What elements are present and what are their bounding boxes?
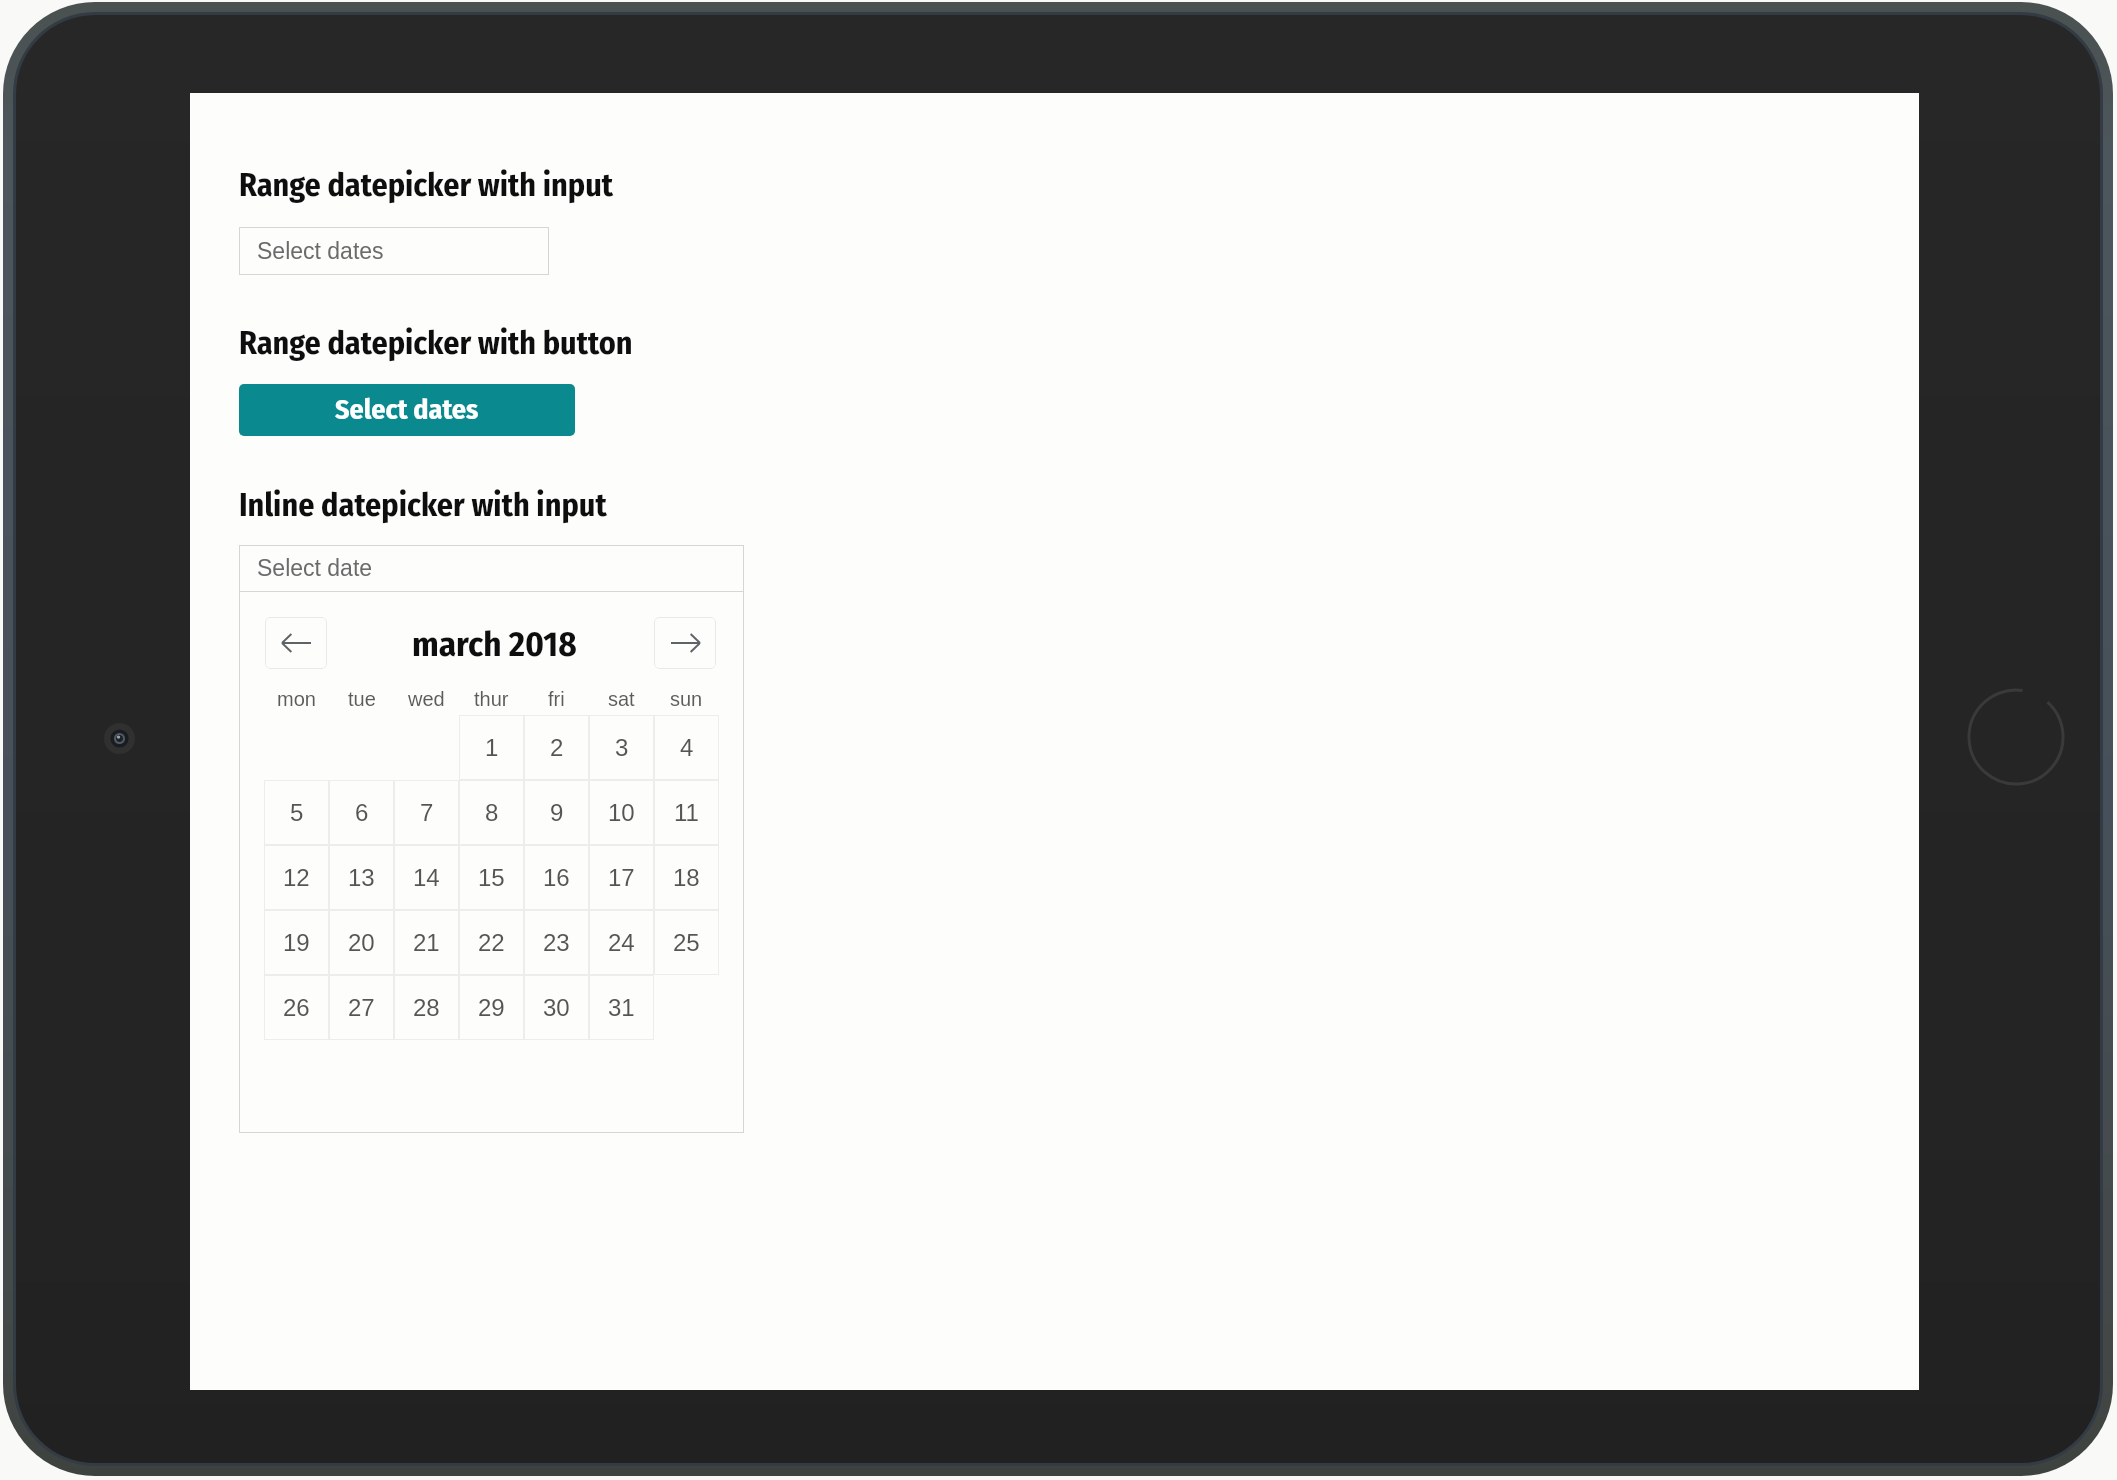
button[interactable]: 15 bbox=[459, 845, 524, 910]
staticText: 28 bbox=[413, 994, 440, 1021]
button[interactable]: 26 bbox=[264, 975, 329, 1040]
button[interactable]: Previous month bbox=[265, 617, 327, 669]
button[interactable]: 18 bbox=[654, 845, 719, 910]
button[interactable]: Select date bbox=[239, 545, 744, 591]
button[interactable]: Next month bbox=[654, 617, 716, 669]
staticText: 2 bbox=[550, 734, 564, 761]
staticText: 12 bbox=[283, 864, 310, 891]
button[interactable]: 11 bbox=[654, 780, 719, 845]
staticText: 22 bbox=[478, 929, 505, 956]
button[interactable]: 23 bbox=[524, 910, 589, 975]
staticText: 11 bbox=[674, 799, 699, 826]
button[interactable]: 5 bbox=[264, 780, 329, 845]
staticText: 20 bbox=[348, 929, 375, 956]
staticText: 1 bbox=[485, 734, 499, 761]
button[interactable]: 9 bbox=[524, 780, 589, 845]
button[interactable]: 20 bbox=[329, 910, 394, 975]
staticText: sat bbox=[608, 688, 635, 710]
staticText: mon bbox=[277, 688, 316, 710]
button[interactable]: 31 bbox=[589, 975, 654, 1040]
button[interactable]: 16 bbox=[524, 845, 589, 910]
staticText: wed bbox=[408, 688, 445, 710]
button[interactable]: 13 bbox=[329, 845, 394, 910]
button[interactable]: 3 bbox=[589, 715, 654, 780]
button[interactable]: 14 bbox=[394, 845, 459, 910]
staticText: 16 bbox=[543, 864, 570, 891]
button[interactable]: 29 bbox=[459, 975, 524, 1040]
button[interactable]: 8 bbox=[459, 780, 524, 845]
staticText: tue bbox=[348, 688, 376, 710]
staticText: Select dates bbox=[257, 238, 384, 264]
button[interactable]: 24 bbox=[589, 910, 654, 975]
staticText: Select dates bbox=[335, 393, 479, 427]
staticText: 6 bbox=[355, 799, 369, 826]
staticText: 10 bbox=[608, 799, 635, 826]
staticText: 23 bbox=[543, 929, 570, 956]
button[interactable]: 7 bbox=[394, 780, 459, 845]
staticText: 7 bbox=[420, 799, 434, 826]
staticText: 29 bbox=[478, 994, 505, 1021]
button[interactable]: 27 bbox=[329, 975, 394, 1040]
staticText: 5 bbox=[290, 799, 304, 826]
staticText: 8 bbox=[485, 799, 499, 826]
button[interactable]: 2 bbox=[524, 715, 589, 780]
staticText: 17 bbox=[608, 864, 635, 891]
staticText: 25 bbox=[673, 929, 700, 956]
staticText: fri bbox=[548, 688, 565, 710]
button[interactable]: 1 bbox=[459, 715, 524, 780]
staticText: 31 bbox=[608, 994, 635, 1021]
staticText: Range datepicker with button bbox=[239, 324, 633, 362]
staticText: 30 bbox=[543, 994, 570, 1021]
staticText: 9 bbox=[550, 799, 564, 826]
staticText: 14 bbox=[413, 864, 440, 891]
staticText: thur bbox=[474, 688, 509, 710]
button[interactable]: 25 bbox=[654, 910, 719, 975]
staticText: 27 bbox=[348, 994, 375, 1021]
staticText: 15 bbox=[478, 864, 505, 891]
staticText: 26 bbox=[283, 994, 310, 1021]
staticText: 19 bbox=[283, 929, 310, 956]
button[interactable]: 30 bbox=[524, 975, 589, 1040]
staticText: march 2018 bbox=[412, 623, 577, 665]
button[interactable]: 12 bbox=[264, 845, 329, 910]
staticText: sun bbox=[670, 688, 703, 710]
staticText: 3 bbox=[615, 734, 629, 761]
staticText: Range datepicker with input bbox=[239, 166, 614, 204]
button[interactable]: 6 bbox=[329, 780, 394, 845]
button[interactable]: 22 bbox=[459, 910, 524, 975]
button[interactable]: 19 bbox=[264, 910, 329, 975]
button[interactable]: 4 bbox=[654, 715, 719, 780]
staticText: 21 bbox=[413, 929, 440, 956]
button[interactable]: 28 bbox=[394, 975, 459, 1040]
staticText: 13 bbox=[348, 864, 375, 891]
button[interactable]: Select dates bbox=[239, 227, 549, 275]
staticText: Inline datepicker with input bbox=[239, 486, 607, 524]
button[interactable]: 10 bbox=[589, 780, 654, 845]
button[interactable]: 21 bbox=[394, 910, 459, 975]
staticText: 18 bbox=[673, 864, 700, 891]
staticText: 4 bbox=[680, 734, 694, 761]
button[interactable]: Select dates bbox=[239, 384, 575, 436]
staticText: 24 bbox=[608, 929, 635, 956]
staticText: Select date bbox=[257, 555, 373, 581]
button[interactable]: 17 bbox=[589, 845, 654, 910]
